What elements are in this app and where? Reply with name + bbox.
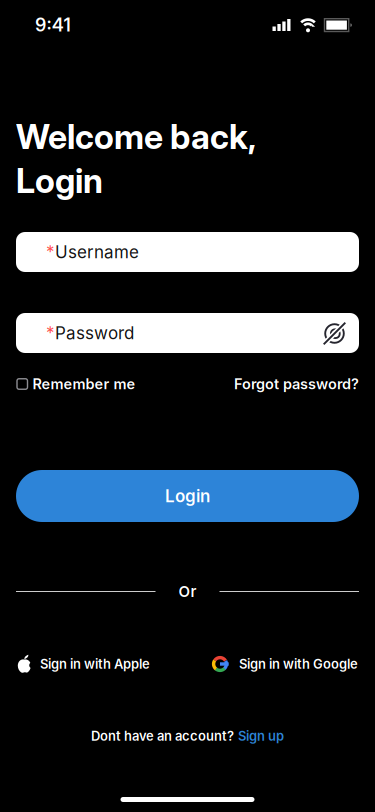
staticText: Dont have an account? [91,728,234,744]
staticText: * [46,242,55,262]
button[interactable]: Remember me [17,375,135,393]
button[interactable]: Show password [321,320,347,346]
button[interactable]: * [16,313,359,353]
button[interactable]: Forgot password? [234,375,359,393]
staticText: Sign in with Google [239,656,358,672]
staticText: Welcome back, [16,116,256,157]
staticText: Remember me [32,375,135,393]
button[interactable]: Sign in with Apple [17,654,150,673]
staticText: Username [55,242,139,262]
button[interactable]: * [16,232,359,272]
staticText: Sign up [238,728,284,744]
staticText: * [46,323,55,343]
button[interactable]: Sign up [238,728,284,744]
staticText: Password [55,323,134,343]
button[interactable]: Sign in with Google [211,655,358,673]
staticText: 9:41 [35,14,71,36]
staticText: Sign in with Apple [40,656,150,672]
staticText: Login [165,486,210,506]
staticText: Login [16,160,103,201]
staticText: Or [178,582,196,600]
button[interactable]: Login [16,470,359,522]
staticText: Forgot password? [234,375,359,393]
